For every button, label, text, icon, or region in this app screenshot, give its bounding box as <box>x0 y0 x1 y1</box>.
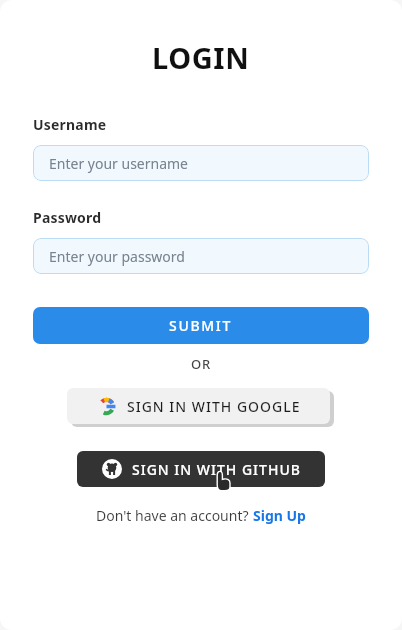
staticText: Enter your username <box>49 154 189 173</box>
staticText: Password <box>33 208 102 227</box>
button[interactable]: Enter your password <box>33 238 369 274</box>
button[interactable]: Don't have an account? <box>96 506 306 525</box>
button[interactable]: Enter your username <box>33 145 369 181</box>
staticText: OR <box>191 355 212 373</box>
other: GitHub logo <box>102 459 122 479</box>
other: Google logo <box>97 397 116 416</box>
staticText: SUBMIT <box>169 316 233 335</box>
staticText: SIGN IN WITH GOOGLE <box>127 397 301 416</box>
button[interactable]: GitHub logo <box>77 451 325 487</box>
button[interactable]: Google logo <box>67 388 330 424</box>
staticText: Don't have an account? <box>96 506 253 525</box>
staticText: SIGN IN WITH GITHUB <box>132 460 301 479</box>
staticText: LOGIN <box>152 38 250 77</box>
staticText: Enter your password <box>49 247 185 266</box>
staticText: Sign Up <box>253 506 306 525</box>
staticText: Username <box>33 115 107 134</box>
button[interactable]: SUBMIT <box>33 307 369 344</box>
